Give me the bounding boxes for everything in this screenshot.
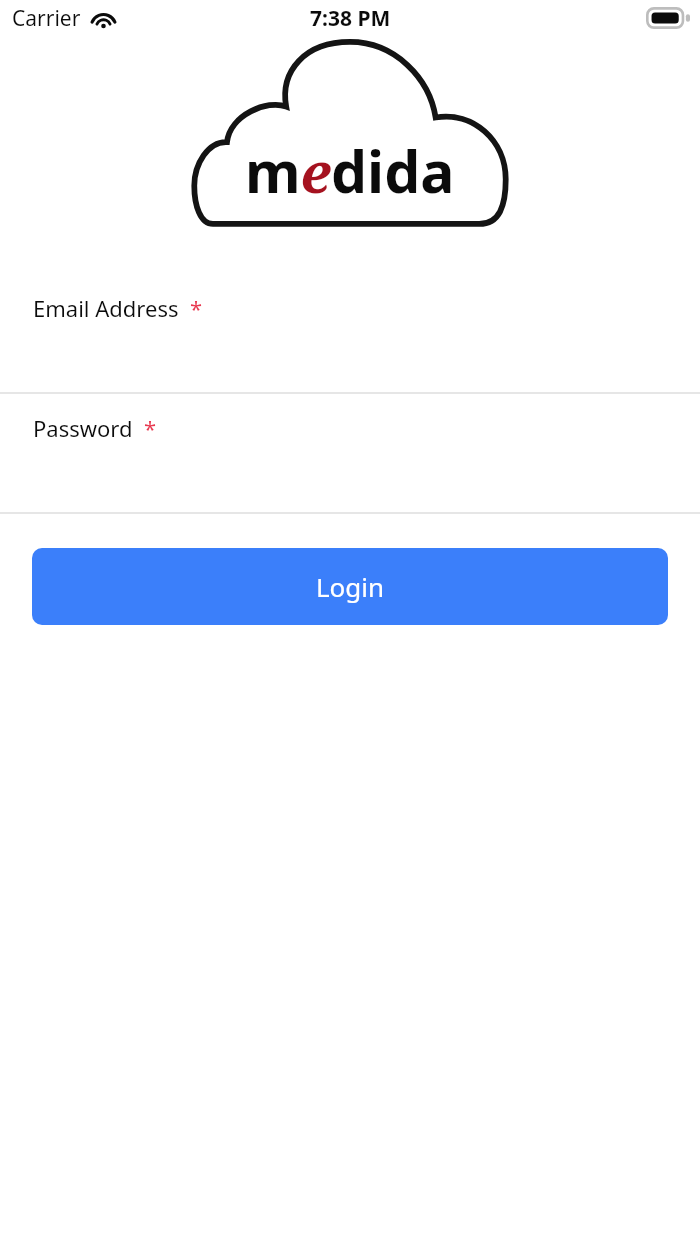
button[interactable]: Login [32, 548, 668, 625]
staticText: Login [316, 569, 385, 604]
other: Battery full [646, 7, 690, 29]
staticText: medida [245, 132, 455, 210]
staticText: Email Address * [33, 293, 203, 323]
button[interactable]: Email Address * [0, 274, 700, 392]
staticText: 7:38 PM [310, 4, 391, 33]
staticText: Carrier [12, 4, 81, 33]
other: Wi-Fi signal [90, 8, 117, 29]
button[interactable]: Password * [0, 394, 700, 512]
staticText: Password * [33, 413, 157, 443]
